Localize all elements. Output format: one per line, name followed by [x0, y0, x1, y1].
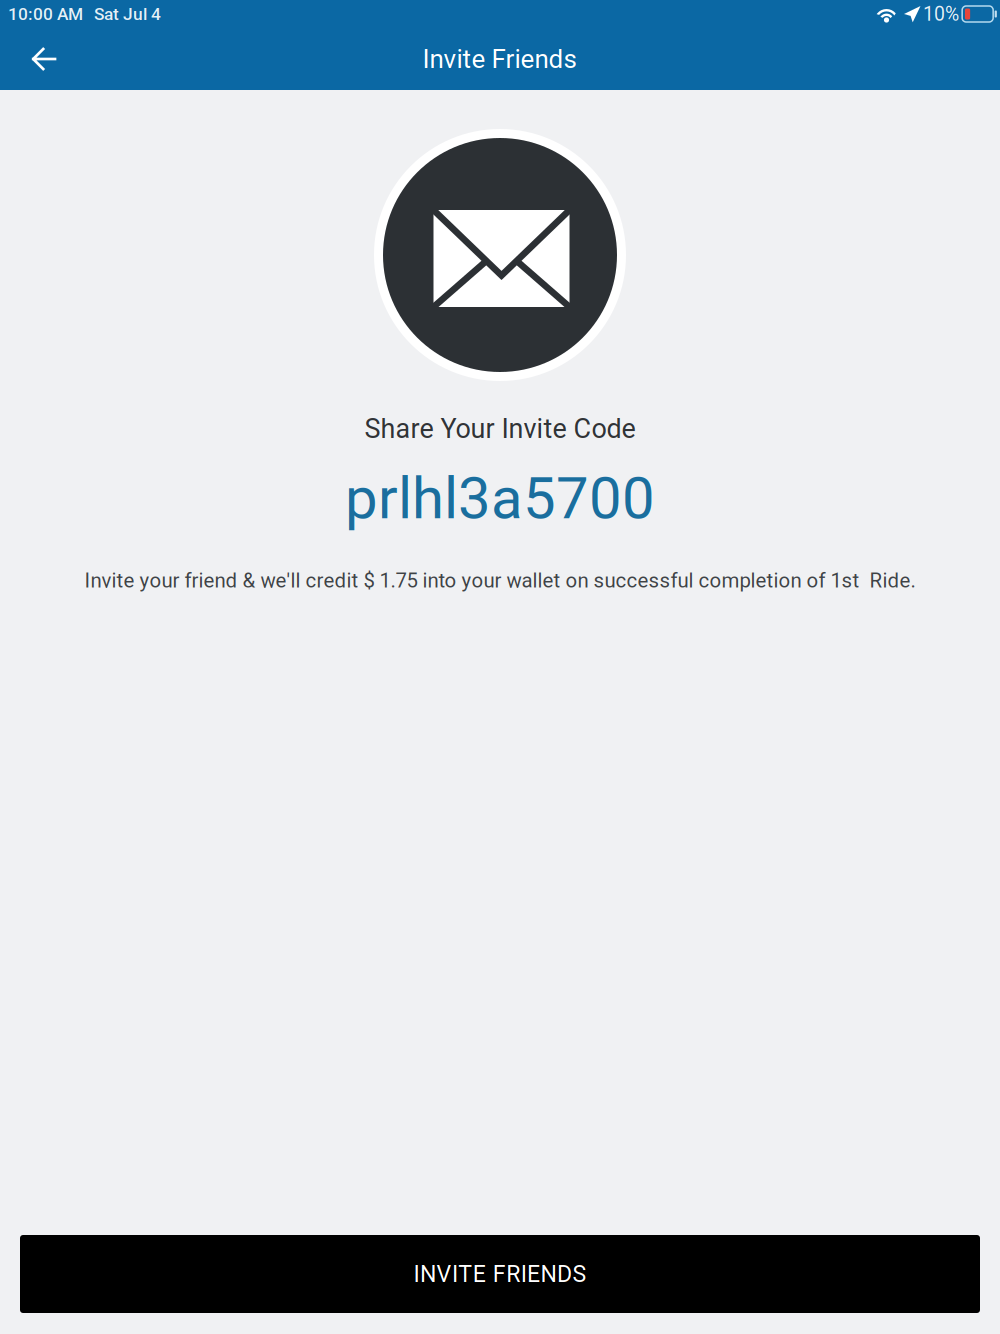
staticText: INVITE FRIENDS — [414, 1260, 586, 1287]
staticText: Invite Friends — [422, 44, 576, 74]
button[interactable]: Back — [12, 28, 76, 90]
staticText: prlhl3a5700 — [345, 465, 655, 533]
button[interactable]: INVITE FRIENDS — [20, 1235, 980, 1313]
staticText: Share Your Invite Code — [364, 413, 635, 445]
staticText: 10% — [923, 3, 959, 25]
staticText: Invite your friend & we'll credit $ 1.75… — [84, 568, 915, 592]
staticText: 10:00 AM — [8, 4, 83, 24]
staticText: Sat Jul 4 — [94, 4, 161, 24]
